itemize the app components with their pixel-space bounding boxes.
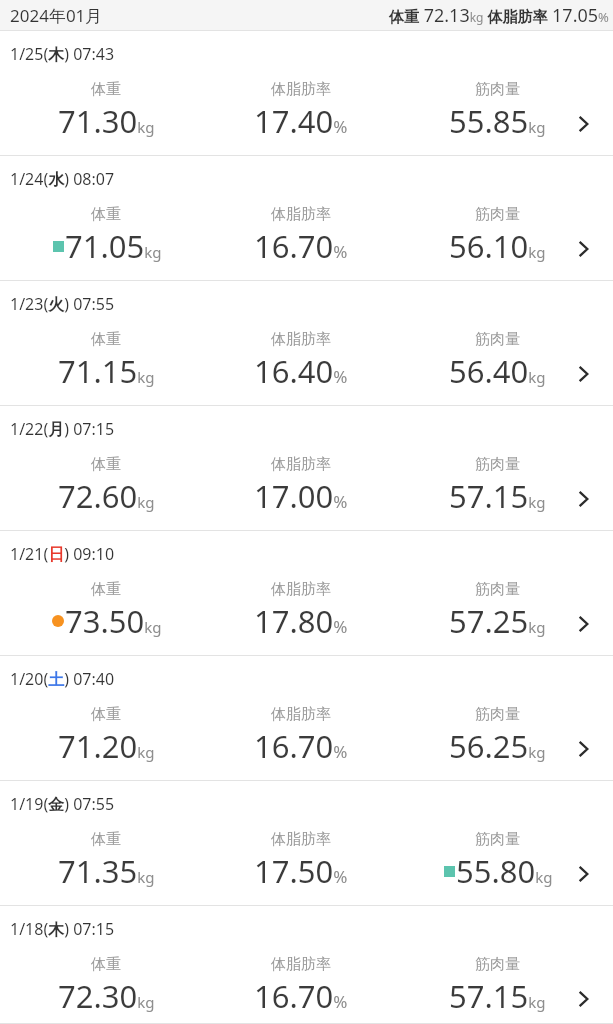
button[interactable]: 体脂肪率: [206, 80, 396, 142]
staticText: 体脂肪率: [271, 455, 331, 474]
staticText: 体重: [91, 205, 121, 224]
button[interactable]: 体重: [11, 80, 201, 142]
button[interactable]: 体脂肪率: [206, 455, 396, 517]
staticText: 17.40%: [254, 100, 348, 142]
button[interactable]: 1/23(火) 07:55: [0, 281, 613, 406]
staticText: 体重: [91, 705, 121, 724]
staticText: 体重 72.13kg 体脂肪率 17.05%: [389, 3, 609, 28]
button[interactable]: 1/21(日) 09:10: [0, 531, 613, 656]
button[interactable]: 詳細: [562, 353, 604, 395]
staticText: 57.15kg: [449, 475, 546, 517]
staticText: 1/25(木) 07:43: [10, 43, 115, 65]
staticText: 1/23(火) 07:55: [10, 293, 115, 315]
button[interactable]: 詳細: [562, 228, 604, 270]
staticText: 72.30kg: [58, 975, 155, 1017]
staticText: 71.30kg: [58, 100, 155, 142]
button[interactable]: 1/25(木) 07:43: [0, 31, 613, 156]
button[interactable]: 筋肉量: [402, 955, 592, 1017]
button[interactable]: 1/18(木) 07:15: [0, 906, 613, 1024]
staticText: 17.80%: [254, 600, 348, 642]
staticText: 2024年01月: [10, 4, 103, 27]
button[interactable]: 体重: [11, 955, 201, 1017]
staticText: 17.00%: [254, 475, 348, 517]
button[interactable]: 筋肉量: [402, 455, 592, 517]
staticText: 体脂肪率: [271, 705, 331, 724]
button[interactable]: 体脂肪率: [206, 705, 396, 767]
staticText: 体脂肪率: [271, 205, 331, 224]
button[interactable]: 体重: [11, 580, 201, 642]
staticText: 55.85kg: [449, 100, 546, 142]
staticText: 73.50kg: [65, 600, 162, 642]
staticText: 体重: [91, 955, 121, 974]
button[interactable]: 詳細: [562, 978, 604, 1020]
staticText: 71.20kg: [58, 725, 155, 767]
staticText: 筋肉量: [475, 455, 520, 474]
button[interactable]: 体重: [11, 455, 201, 517]
staticText: 57.15kg: [449, 975, 546, 1017]
button[interactable]: 体重: [11, 705, 201, 767]
staticText: 71.15kg: [58, 350, 155, 392]
staticText: 16.40%: [254, 350, 348, 392]
staticText: 1/20(土) 07:40: [10, 668, 115, 690]
staticText: 16.70%: [254, 975, 348, 1017]
staticText: 体重: [91, 580, 121, 599]
button[interactable]: 筋肉量: [402, 205, 592, 267]
button[interactable]: 筋肉量: [402, 580, 592, 642]
button[interactable]: 体脂肪率: [206, 205, 396, 267]
staticText: 筋肉量: [475, 955, 520, 974]
staticText: 1/21(日) 09:10: [10, 543, 115, 565]
staticText: 16.70%: [254, 725, 348, 767]
button[interactable]: 体重: [11, 330, 201, 392]
staticText: 筋肉量: [475, 580, 520, 599]
staticText: 体脂肪率: [271, 955, 331, 974]
button[interactable]: 1/22(月) 07:15: [0, 406, 613, 531]
staticText: 16.70%: [254, 225, 348, 267]
button[interactable]: 体脂肪率: [206, 955, 396, 1017]
button[interactable]: 体脂肪率: [206, 330, 396, 392]
staticText: 71.35kg: [58, 850, 155, 892]
staticText: 筋肉量: [475, 705, 520, 724]
staticText: 体重: [91, 330, 121, 349]
staticText: 体脂肪率: [271, 330, 331, 349]
staticText: 筋肉量: [475, 205, 520, 224]
button[interactable]: 体重: [11, 830, 201, 892]
staticText: 筋肉量: [475, 330, 520, 349]
button[interactable]: 2024年01月: [0, 0, 613, 31]
staticText: 体重: [91, 455, 121, 474]
staticText: 55.80kg: [456, 850, 553, 892]
staticText: 体重: [91, 830, 121, 849]
button[interactable]: 体重: [11, 205, 201, 267]
staticText: 1/24(水) 08:07: [10, 168, 115, 190]
button[interactable]: 詳細: [562, 728, 604, 770]
button[interactable]: 詳細: [562, 853, 604, 895]
button[interactable]: 1/20(土) 07:40: [0, 656, 613, 781]
button[interactable]: 筋肉量: [402, 705, 592, 767]
staticText: 1/19(金) 07:55: [10, 793, 115, 815]
staticText: 体重: [91, 80, 121, 99]
staticText: 56.25kg: [449, 725, 546, 767]
staticText: 1/22(月) 07:15: [10, 418, 115, 440]
button[interactable]: 体脂肪率: [206, 580, 396, 642]
button[interactable]: 筋肉量: [402, 330, 592, 392]
button[interactable]: 筋肉量: [402, 830, 592, 892]
staticText: 体脂肪率: [271, 830, 331, 849]
staticText: 17.50%: [254, 850, 348, 892]
staticText: 1/18(木) 07:15: [10, 918, 115, 940]
button[interactable]: 筋肉量: [402, 80, 592, 142]
staticText: 56.10kg: [449, 225, 546, 267]
staticText: 71.05kg: [65, 225, 162, 267]
staticText: 56.40kg: [449, 350, 546, 392]
button[interactable]: 1/19(金) 07:55: [0, 781, 613, 906]
staticText: 筋肉量: [475, 830, 520, 849]
staticText: 筋肉量: [475, 80, 520, 99]
button[interactable]: 詳細: [562, 478, 604, 520]
staticText: 72.60kg: [58, 475, 155, 517]
button[interactable]: 詳細: [562, 603, 604, 645]
button[interactable]: 体脂肪率: [206, 830, 396, 892]
button[interactable]: 1/24(水) 08:07: [0, 156, 613, 281]
staticText: 57.25kg: [449, 600, 546, 642]
button[interactable]: 詳細: [562, 103, 604, 145]
staticText: 体脂肪率: [271, 80, 331, 99]
staticText: 体脂肪率: [271, 580, 331, 599]
